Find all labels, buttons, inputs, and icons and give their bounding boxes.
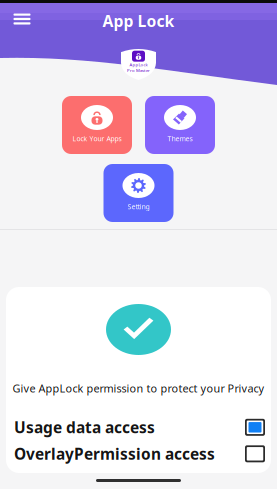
staticText: Setting (127, 202, 149, 211)
button[interactable]: Lock Your Apps (62, 96, 132, 154)
staticText: OverlayPermission access (14, 443, 215, 464)
staticText: Themes (167, 134, 192, 143)
staticText: Lock Your Apps (72, 134, 121, 143)
staticText: Give AppLock permission to protect your … (12, 381, 264, 396)
button[interactable]: Menu (7, 7, 37, 35)
button[interactable]: Usage data access (6, 419, 271, 436)
staticText: Pro Master (127, 67, 150, 73)
staticText: Usage data access (14, 417, 155, 438)
staticText: AppLock (129, 62, 147, 67)
staticText: App Lock (102, 10, 174, 32)
button[interactable]: Setting (103, 164, 173, 222)
button[interactable]: OverlayPermission access (6, 445, 271, 462)
button[interactable]: Themes (145, 96, 215, 154)
